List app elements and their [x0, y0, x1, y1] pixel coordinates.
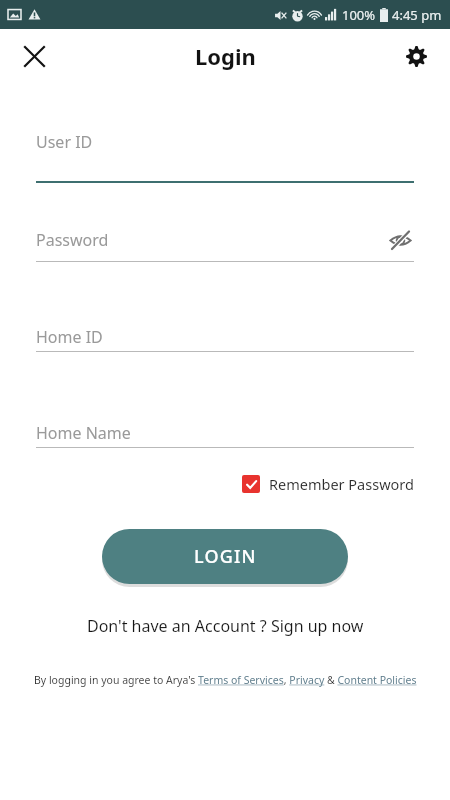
button[interactable]: LOGIN [102, 529, 348, 584]
button[interactable]: Don't have an Account ? Sign up now [79, 611, 372, 641]
staticText: Remember Password [269, 474, 414, 494]
button[interactable]: Close [12, 34, 56, 78]
button[interactable]: Home ID [0, 326, 450, 352]
button[interactable]: Show password [386, 226, 414, 254]
staticText: Don't have an Account ? Sign up now [87, 615, 364, 637]
button[interactable]: User ID [0, 111, 450, 183]
staticText: Home Name [36, 422, 414, 444]
staticText: 4:45 pm [392, 6, 442, 24]
staticText: By logging in you agree to Arya's Terms … [34, 673, 417, 687]
staticText: 100% [342, 6, 376, 24]
button[interactable]: Home Name [0, 422, 450, 448]
staticText: Login [195, 41, 256, 71]
staticText: Home ID [36, 326, 414, 348]
staticText: LOGIN [194, 544, 257, 569]
button[interactable]: Password [0, 226, 450, 262]
button[interactable]: Remember Password [242, 470, 414, 498]
staticText: Password [36, 229, 386, 251]
staticText: User ID [36, 131, 414, 153]
button[interactable]: Settings [394, 34, 438, 78]
button[interactable]: By logging in you agree to Arya's Terms … [24, 671, 427, 689]
